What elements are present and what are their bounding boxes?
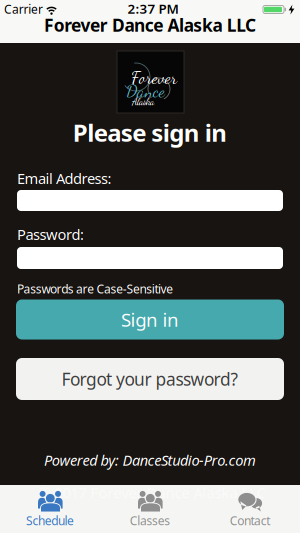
- staticText: Password:: [17, 224, 84, 244]
- button[interactable]: Powered by: DanceStudio-Pro.com: [44, 450, 256, 470]
- staticText: Contact: [230, 512, 270, 528]
- staticText: Carrier: [4, 1, 43, 17]
- staticText: Schedule: [26, 512, 74, 528]
- staticText: Forever: [131, 67, 177, 88]
- staticText: © 2017 Forever Dance Alaska LLC: [38, 483, 265, 502]
- button[interactable]: Schedule: [0, 485, 100, 533]
- staticText: Classes: [130, 512, 170, 528]
- staticText: Sign in: [121, 307, 179, 332]
- button[interactable]: Sign in: [16, 299, 284, 339]
- staticText: Passwords are Case-Sensitive: [17, 281, 173, 297]
- staticText: Forgot your password?: [61, 367, 238, 390]
- button[interactable]: Contact: [200, 485, 300, 533]
- staticText: Alaska: [132, 96, 154, 108]
- staticText: Powered by: DanceStudio-Pro.com: [44, 450, 256, 470]
- staticText: Please sign in: [73, 117, 227, 148]
- staticText: Email Address:: [17, 168, 111, 188]
- staticText: Forever Dance Alaska LLC: [44, 13, 256, 36]
- button[interactable]: Classes: [100, 485, 200, 533]
- staticText: 2:37 PM: [127, 0, 178, 17]
- staticText: Dance: [126, 81, 165, 101]
- button[interactable]: Forgot your password?: [16, 358, 284, 400]
